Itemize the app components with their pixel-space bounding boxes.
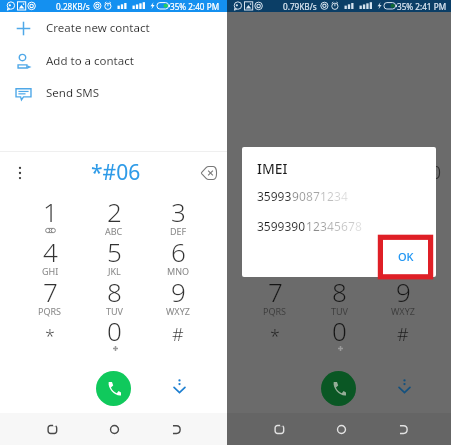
- staticText: TUV: [331, 305, 348, 317]
- staticText: 3: [171, 194, 186, 229]
- staticText: IMEI: [257, 159, 288, 178]
- button[interactable]: OK: [384, 242, 428, 270]
- staticText: DEF: [170, 225, 187, 237]
- staticText: 2: [107, 194, 122, 229]
- button[interactable]: 8: [83, 274, 145, 318]
- staticText: 2: [327, 188, 334, 204]
- staticText: JKL: [108, 265, 121, 277]
- staticText: 3: [320, 218, 327, 234]
- button[interactable]: 7: [19, 274, 81, 318]
- staticText: 1: [306, 218, 313, 234]
- staticText: 4: [341, 188, 348, 204]
- staticText: 0.28KB/s: [56, 1, 90, 12]
- staticText: Create new contact: [46, 20, 150, 36]
- staticText: 3599390: [257, 218, 306, 234]
- staticText: Add to a contact: [46, 53, 134, 69]
- staticText: 7: [43, 274, 58, 309]
- staticText: #: [172, 322, 184, 347]
- staticText: 9: [171, 274, 186, 309]
- staticText: PQRS: [263, 305, 287, 317]
- button[interactable]: Hide keypad: [166, 373, 192, 399]
- staticText: 6: [171, 234, 186, 269]
- staticText: 8: [355, 218, 362, 234]
- staticText: 2: [313, 218, 320, 234]
- staticText: ABC: [105, 225, 123, 237]
- staticText: 7: [348, 218, 355, 234]
- button[interactable]: 4: [19, 234, 81, 278]
- button[interactable]: Send SMS: [0, 78, 227, 108]
- staticText: WXYZ: [166, 305, 190, 317]
- staticText: 1: [43, 194, 58, 229]
- button[interactable]: Home: [325, 413, 357, 445]
- staticText: 4: [327, 218, 334, 234]
- button[interactable]: Backspace: [191, 152, 227, 193]
- staticText: 0: [299, 188, 306, 204]
- staticText: 3: [334, 188, 341, 204]
- staticText: 9: [396, 274, 411, 309]
- button[interactable]: #: [147, 313, 209, 357]
- staticText: 0.79KB/s: [283, 1, 317, 12]
- staticText: #: [397, 322, 409, 347]
- staticText: 5: [107, 234, 122, 269]
- staticText: 7: [313, 188, 320, 204]
- button[interactable]: 5: [83, 234, 145, 278]
- staticText: *#06: [91, 158, 141, 187]
- button[interactable]: 2: [83, 194, 145, 238]
- button[interactable]: Recents: [36, 413, 68, 445]
- button[interactable]: 1: [19, 194, 81, 238]
- button[interactable]: Create new contact: [0, 13, 227, 43]
- staticText: Send SMS: [46, 85, 100, 101]
- button[interactable]: 3: [147, 194, 209, 238]
- staticText: GHI: [42, 265, 59, 277]
- staticText: 0: [107, 313, 122, 348]
- button[interactable]: Back: [387, 413, 419, 445]
- staticText: *: [45, 324, 55, 349]
- button[interactable]: Call: [96, 371, 131, 406]
- staticText: 4: [43, 234, 58, 269]
- staticText: MNO: [167, 265, 190, 277]
- button[interactable]: Home: [98, 413, 130, 445]
- staticText: TUV: [106, 305, 123, 317]
- button[interactable]: Back: [160, 413, 192, 445]
- button[interactable]: 9: [147, 274, 209, 318]
- staticText: 35993: [257, 188, 292, 204]
- staticText: PQRS: [38, 305, 62, 317]
- staticText: WXYZ: [391, 305, 415, 317]
- staticText: 8: [332, 274, 347, 309]
- button[interactable]: More options: [0, 152, 40, 193]
- staticText: 8: [306, 188, 313, 204]
- button[interactable]: Add to a contact: [0, 46, 227, 76]
- staticText: *: [270, 324, 280, 349]
- staticText: 5: [334, 218, 341, 234]
- staticText: 9: [292, 188, 299, 204]
- staticText: 6: [341, 218, 348, 234]
- button[interactable]: Recents: [263, 413, 295, 445]
- staticText: 1: [320, 188, 327, 204]
- staticText: 7: [268, 274, 283, 309]
- button[interactable]: 6: [147, 234, 209, 278]
- button[interactable]: 0: [83, 313, 145, 357]
- staticText: 0: [332, 313, 347, 348]
- staticText: 8: [107, 274, 122, 309]
- staticText: 35% 2:41 PM: [397, 1, 447, 12]
- staticText: 35% 2:40 PM: [170, 1, 220, 12]
- staticText: OK: [398, 249, 414, 264]
- button[interactable]: *: [19, 313, 81, 357]
